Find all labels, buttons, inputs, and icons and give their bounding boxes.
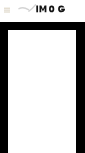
button[interactable]: IMOG home [18,2,68,17]
button[interactable]: Menu [0,3,14,19]
